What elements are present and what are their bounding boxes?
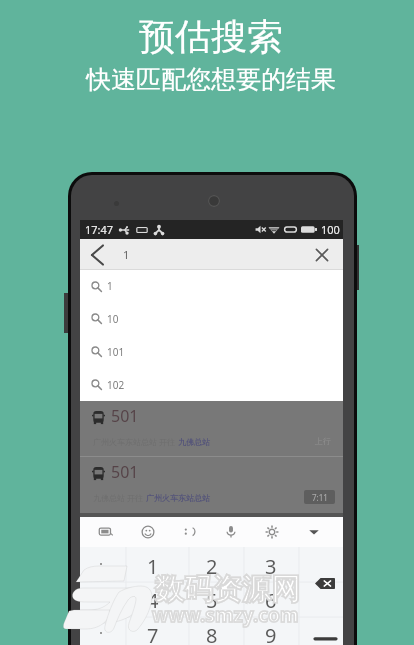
staticText: 7: [147, 622, 159, 645]
button[interactable]: 1: [80, 270, 343, 302]
staticText: 广州火车东站总站: [146, 493, 210, 503]
button[interactable]: 2: [196, 553, 228, 579]
button[interactable]: 9: [255, 622, 287, 645]
staticText: 数码资源网: [155, 571, 300, 608]
button[interactable]: 101: [80, 335, 343, 368]
button[interactable]: 7: [137, 622, 169, 645]
staticText: 100: [321, 222, 340, 237]
button[interactable]: 1: [137, 553, 169, 579]
staticText: 3: [265, 553, 277, 579]
staticText: 501: [111, 405, 139, 427]
staticText: 10: [107, 312, 119, 326]
button[interactable]: 10: [80, 302, 343, 335]
button[interactable]: 6: [255, 587, 287, 613]
button[interactable]: Keyboard option 6: [303, 521, 325, 543]
button[interactable]: 5: [196, 587, 228, 613]
button[interactable]: 501: [80, 401, 343, 456]
staticText: 快速匹配您想要的结果: [86, 64, 336, 95]
button[interactable]: Keyboard option 2: [137, 521, 159, 543]
button[interactable]: 4: [137, 587, 169, 613]
staticText: 17:47: [85, 222, 114, 237]
staticText: 预估搜索: [139, 14, 283, 59]
staticText: 数码资源网: [155, 571, 300, 608]
staticText: 6: [265, 587, 277, 613]
button[interactable]: Keyboard option 5: [261, 521, 283, 543]
button[interactable]: Clear: [309, 242, 335, 268]
staticText: 102: [107, 378, 125, 392]
button[interactable]: 3: [255, 553, 287, 579]
staticText: 4: [147, 587, 159, 613]
button[interactable]: Back: [84, 241, 112, 269]
button[interactable]: Enter: [305, 625, 345, 645]
button[interactable]: [85, 622, 117, 645]
button[interactable]: Keyboard option 4: [220, 521, 242, 543]
staticText: 九佛总站: [178, 437, 210, 447]
staticText: 8: [206, 622, 218, 645]
staticText: 101: [107, 345, 125, 359]
button[interactable]: [85, 553, 117, 579]
button[interactable]: Keyboard option 1: [95, 521, 117, 543]
button[interactable]: 8: [196, 622, 228, 645]
staticText: 7:11: [312, 492, 328, 503]
staticText: 2: [206, 553, 218, 579]
button[interactable]: 102: [80, 368, 343, 401]
button[interactable]: Backspace: [307, 570, 343, 596]
staticText: 1: [147, 553, 159, 579]
staticText: 501: [111, 461, 139, 483]
staticText: 5: [206, 587, 218, 613]
staticText: 上行: [315, 436, 331, 446]
button[interactable]: Keyboard option 3: [179, 521, 201, 543]
staticText: www.smzy.com: [152, 602, 299, 628]
staticText: www.smzy.com: [152, 602, 299, 628]
staticText: 9: [265, 622, 277, 645]
button[interactable]: 501: [80, 457, 343, 513]
staticText: 1: [123, 247, 130, 262]
button[interactable]: [85, 587, 117, 613]
staticText: 1: [107, 279, 113, 293]
